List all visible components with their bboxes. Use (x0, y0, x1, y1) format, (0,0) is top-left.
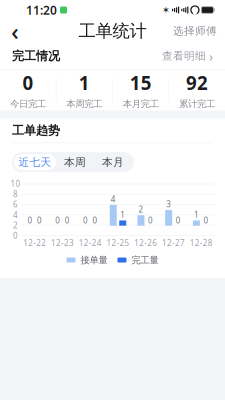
staticText: 0 (55, 215, 60, 226)
staticText: 完工量 (131, 254, 158, 266)
button[interactable]: 返回 (0, 18, 30, 44)
button[interactable]: 本周 (56, 154, 94, 170)
staticText: 3 (166, 199, 171, 209)
staticText: 本月 (102, 156, 124, 169)
staticText: 1 (120, 209, 125, 220)
staticText: 10 (10, 178, 20, 189)
staticText: 0 (92, 215, 97, 226)
staticText: 6 (13, 199, 18, 210)
staticText: 12-27 (162, 238, 185, 248)
staticText: 1 (194, 209, 199, 220)
button[interactable]: 完工情况 (0, 43, 225, 69)
staticText: ✶ (162, 5, 170, 15)
staticText: 12-25 (106, 238, 129, 248)
staticText: 4 (111, 194, 116, 204)
staticText: 1 (79, 70, 90, 95)
staticText: 12-26 (134, 238, 157, 248)
staticText: 工单统计 (78, 20, 146, 42)
staticText: 2 (13, 220, 18, 231)
staticText: 查看明细 (162, 49, 206, 62)
staticText: 0 (203, 215, 208, 226)
button[interactable]: 近七天 (14, 154, 56, 170)
staticText: 累计完工 (179, 98, 215, 110)
staticText: 2 (138, 204, 143, 215)
staticText: 12-28 (190, 238, 213, 248)
staticText: 15 (130, 70, 152, 95)
staticText: 12-24 (79, 238, 102, 248)
staticText: 今日完工 (10, 98, 46, 110)
staticText: 12-23 (51, 238, 74, 248)
staticText: 本周 (64, 156, 86, 169)
staticText: 本月完工 (123, 98, 159, 110)
staticText: 0 (37, 215, 42, 226)
staticText: 接单量 (80, 254, 107, 266)
button[interactable]: 本月 (94, 154, 132, 170)
staticText: 完工情况 (12, 49, 60, 63)
staticText: 4 (13, 210, 18, 220)
staticText: 8 (13, 189, 18, 199)
staticText: ‹ (11, 15, 19, 47)
staticText: 0 (83, 215, 88, 226)
staticText: 0 (176, 215, 181, 226)
staticText: 0 (13, 230, 18, 241)
staticText: 工单趋势 (12, 123, 60, 138)
staticText: 0 (22, 70, 33, 95)
staticText: 近七天 (18, 156, 51, 169)
staticText: › (209, 47, 213, 65)
staticText: 0 (148, 215, 153, 226)
staticText: 0 (65, 215, 70, 226)
staticText: 0 (28, 215, 33, 226)
staticText: 92 (186, 70, 208, 95)
staticText: 12-22 (23, 238, 46, 248)
staticText: 选择师傅 (173, 24, 217, 37)
button[interactable]: 选择师傅 (165, 18, 225, 44)
staticText: 本周完工 (66, 98, 102, 110)
staticText: 11:20 (26, 2, 57, 18)
